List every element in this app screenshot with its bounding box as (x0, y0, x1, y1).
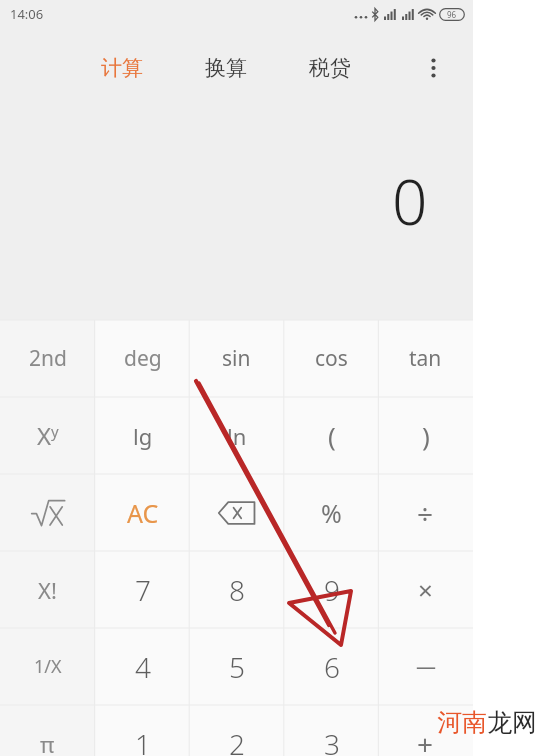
staticText: 换算 (205, 55, 247, 81)
button[interactable]: tan (378, 320, 473, 397)
button[interactable]: 5 (189, 628, 284, 705)
staticText: 1/X (34, 654, 62, 679)
staticText: 2nd (29, 344, 67, 373)
button[interactable]: ( (284, 397, 379, 474)
button[interactable]: 2nd (0, 320, 95, 397)
staticText: 96 (447, 9, 457, 20)
button[interactable]: ln (189, 397, 284, 474)
staticText: ÷ (417, 494, 434, 532)
staticText: 税贷 (309, 55, 351, 81)
staticText: + (417, 725, 434, 756)
button[interactable]: 税贷 (303, 47, 357, 89)
staticText: ln (227, 421, 247, 451)
button[interactable]: sin (189, 320, 284, 397)
button[interactable]: More options (413, 48, 453, 88)
button[interactable]: Xy (0, 397, 95, 474)
staticText: 计算 (101, 55, 143, 81)
staticText: 1 (135, 725, 151, 756)
staticText: 4 (135, 648, 151, 686)
staticText: 7 (135, 571, 151, 609)
staticText: tan (409, 344, 442, 373)
button[interactable]: 3 (284, 705, 379, 756)
staticText: Xy (37, 419, 59, 452)
staticText: ) (422, 418, 430, 453)
button[interactable]: 换算 (199, 47, 253, 89)
staticText: 河南龙网 (437, 707, 537, 738)
staticText: 9 (324, 571, 340, 609)
staticText: sin (222, 344, 251, 373)
staticText: 14:06 (10, 5, 44, 23)
button[interactable]: × (378, 551, 473, 628)
button[interactable]: lg (95, 397, 190, 474)
staticText: × (418, 572, 433, 607)
button[interactable]: 6 (284, 628, 379, 705)
button[interactable]: 2 (189, 705, 284, 756)
staticText: 5 (229, 648, 245, 686)
button[interactable]: 1/X (0, 628, 95, 705)
button[interactable]: — (378, 628, 473, 705)
button[interactable]: % (284, 474, 379, 551)
button[interactable]: deg (95, 320, 190, 397)
staticText: cos (315, 344, 348, 373)
button[interactable] (0, 474, 95, 551)
staticText: % (321, 496, 342, 530)
button[interactable]: ) (378, 397, 473, 474)
staticText: π (40, 729, 55, 756)
button[interactable]: 8 (189, 551, 284, 628)
staticText: AC (127, 496, 159, 530)
staticText: 3 (324, 725, 340, 756)
staticText: 8 (229, 571, 245, 609)
button[interactable]: Backspace (189, 474, 284, 551)
button[interactable]: 7 (95, 551, 190, 628)
button[interactable]: 计算 (95, 47, 149, 89)
staticText: 0 (392, 159, 428, 243)
button[interactable]: 9 (284, 551, 379, 628)
button[interactable]: X! (0, 551, 95, 628)
button[interactable]: 4 (95, 628, 190, 705)
button[interactable]: cos (284, 320, 379, 397)
button[interactable]: π (0, 705, 95, 756)
button[interactable]: + (378, 705, 473, 756)
staticText: ( (328, 418, 336, 453)
button[interactable]: 1 (95, 705, 190, 756)
staticText: X! (38, 575, 57, 605)
staticText: deg (124, 344, 162, 373)
button[interactable]: ÷ (378, 474, 473, 551)
staticText: lg (133, 421, 153, 451)
staticText: 2 (229, 725, 245, 756)
staticText: 6 (324, 648, 340, 686)
staticText: — (416, 653, 436, 680)
button[interactable]: AC (95, 474, 190, 551)
